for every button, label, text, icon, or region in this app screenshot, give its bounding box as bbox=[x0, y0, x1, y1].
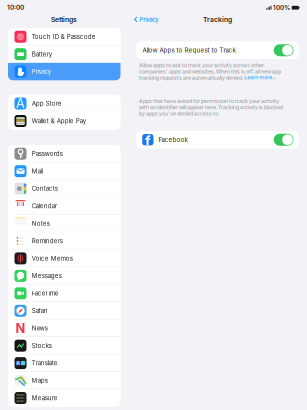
staticText: Tracking bbox=[203, 15, 232, 23]
staticText: Reminders bbox=[32, 237, 63, 245]
button[interactable]: Mail bbox=[8, 162, 120, 180]
staticText: Privacy bbox=[139, 16, 158, 23]
button[interactable]: A bbox=[8, 354, 120, 372]
staticText: App Store bbox=[32, 100, 62, 107]
staticText: Messages bbox=[32, 272, 62, 280]
staticText: Mail bbox=[32, 167, 43, 175]
staticText: Learn more... bbox=[244, 74, 275, 80]
button[interactable]: Privacy bbox=[8, 63, 120, 80]
staticText: Facebook bbox=[158, 136, 187, 143]
button[interactable]: Stocks bbox=[8, 337, 120, 354]
staticText: 10:00 bbox=[7, 3, 24, 11]
button[interactable]: Touch ID & Passcode bbox=[8, 28, 120, 45]
staticText: News bbox=[32, 324, 48, 332]
staticText: FaceTime bbox=[32, 290, 59, 297]
staticText: Safari bbox=[32, 307, 47, 314]
button[interactable]: Notes bbox=[8, 215, 120, 232]
staticText: Apps that have asked for permission to t… bbox=[139, 98, 283, 117]
staticText: Privacy bbox=[32, 68, 51, 75]
button[interactable]: Wallet & Apple Pay bbox=[8, 112, 120, 130]
button[interactable]: Passwords bbox=[8, 145, 120, 162]
staticText: Calendar bbox=[32, 202, 57, 210]
staticText: Touch ID & Passcode bbox=[32, 33, 96, 40]
button[interactable]: Voice Memos bbox=[8, 250, 120, 267]
staticText: Allow Apps to Request to Track bbox=[142, 47, 235, 54]
button[interactable]: A bbox=[8, 95, 120, 112]
staticText: Maps bbox=[32, 377, 48, 384]
staticText: Battery bbox=[32, 50, 52, 58]
button[interactable]: Safari bbox=[8, 302, 120, 319]
button[interactable]: N bbox=[8, 319, 120, 337]
button[interactable]: Contacts bbox=[8, 180, 120, 197]
button[interactable]: Privacy bbox=[128, 14, 158, 25]
button[interactable]: FaceTime bbox=[8, 285, 120, 302]
staticText: 100% bbox=[273, 4, 290, 11]
button[interactable]: Allow Apps to Request to Track bbox=[136, 41, 299, 59]
staticText: N bbox=[15, 320, 25, 336]
staticText: Passwords bbox=[32, 150, 63, 157]
staticText: Notes bbox=[32, 220, 50, 227]
button[interactable]: Calendar bbox=[8, 197, 120, 215]
staticText: Translate bbox=[32, 359, 58, 367]
button[interactable]: Maps bbox=[8, 372, 120, 389]
staticText: Stocks bbox=[32, 342, 52, 349]
staticText: A bbox=[16, 360, 19, 366]
button[interactable]: Messages bbox=[8, 267, 120, 284]
staticText: Voice Memos bbox=[32, 255, 73, 262]
button[interactable]: Battery bbox=[8, 45, 120, 63]
staticText: Settings bbox=[51, 15, 77, 23]
staticText: Contacts bbox=[32, 185, 58, 192]
staticText: A bbox=[16, 96, 25, 111]
button[interactable]: f bbox=[136, 131, 299, 149]
staticText: Measure bbox=[32, 394, 58, 402]
button[interactable]: Measure bbox=[8, 389, 120, 407]
button[interactable]: Reminders bbox=[8, 232, 120, 250]
staticText: Wallet & Apple Pay bbox=[32, 117, 86, 125]
staticText: Allow apps to ask to track your activity… bbox=[139, 62, 281, 81]
staticText: f bbox=[145, 132, 151, 150]
